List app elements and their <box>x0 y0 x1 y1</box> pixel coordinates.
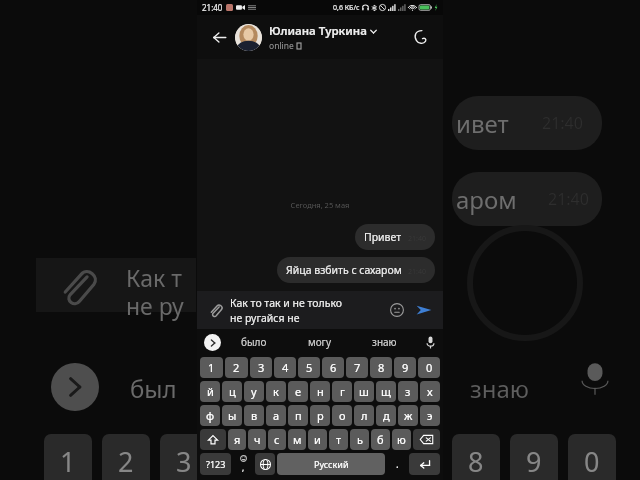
button[interactable]: 0 <box>418 357 440 378</box>
button[interactable]: Voice input <box>417 329 443 355</box>
button[interactable]: 3 <box>250 357 272 378</box>
staticText: д <box>383 408 390 423</box>
button[interactable]: и <box>308 429 327 450</box>
staticText: ц <box>229 384 236 399</box>
button[interactable]: 4 <box>274 357 296 378</box>
button[interactable]: 5 <box>298 357 320 378</box>
button[interactable]: щ <box>376 381 396 402</box>
button[interactable]: л <box>354 405 374 426</box>
button[interactable]: ы <box>222 405 242 426</box>
button[interactable]: Change language <box>255 453 275 475</box>
button[interactable]: знаю <box>352 329 417 355</box>
button[interactable]: . <box>387 453 407 475</box>
button[interactable]: 6 <box>322 357 344 378</box>
button[interactable]: ?123 <box>200 453 231 475</box>
button[interactable]: н <box>310 381 330 402</box>
button[interactable]: Shift <box>200 429 226 450</box>
staticText: знаю <box>470 372 529 405</box>
button[interactable]: й <box>200 381 220 402</box>
button[interactable]: было <box>221 329 287 355</box>
staticText: 21:40 <box>542 112 583 134</box>
button[interactable]: я <box>228 429 246 450</box>
button[interactable]: п <box>288 405 308 426</box>
button[interactable]: Enter <box>409 453 440 475</box>
button[interactable]: о <box>332 405 352 426</box>
staticText: г <box>340 384 345 399</box>
staticText: могу <box>308 335 332 349</box>
button[interactable]: More suggestions <box>204 334 221 351</box>
staticText: ч <box>254 432 261 447</box>
staticText: было <box>241 335 267 349</box>
button[interactable]: а <box>266 405 286 426</box>
button[interactable]: Emoji and comma <box>233 453 253 475</box>
button[interactable]: Яйца взбить с сахаром <box>277 257 435 283</box>
staticText: 9 <box>526 443 542 480</box>
button[interactable]: Юлиана Туркина <box>235 23 406 52</box>
button[interactable]: Привет <box>355 224 435 250</box>
staticText: 1 <box>208 360 215 375</box>
staticText: 0,6 КБ/c <box>333 3 360 13</box>
staticText: э <box>427 408 433 423</box>
button[interactable]: могу <box>287 329 352 355</box>
staticText: 8 <box>378 360 385 375</box>
button[interactable]: Attach <box>204 299 226 321</box>
button[interactable]: 7 <box>346 357 368 378</box>
staticText: 3 <box>176 443 192 480</box>
staticText: п <box>295 408 302 423</box>
button[interactable]: Call <box>406 23 434 51</box>
button[interactable]: Backspace <box>413 429 440 450</box>
staticText: 8 <box>468 443 484 480</box>
staticText: аром <box>456 183 517 216</box>
staticText: не ругайся не <box>230 311 300 325</box>
button[interactable]: м <box>288 429 306 450</box>
staticText: ш <box>359 384 369 399</box>
staticText: ф <box>206 408 215 423</box>
staticText: щ <box>381 384 391 399</box>
staticText: ж <box>404 408 413 423</box>
button[interactable]: Русский <box>277 453 385 475</box>
staticText: Как т <box>126 262 182 293</box>
button[interactable]: 1 <box>200 357 223 378</box>
staticText: 0 <box>426 360 433 375</box>
staticText: л <box>361 408 368 423</box>
button[interactable]: Send <box>412 298 436 322</box>
staticText: р <box>317 408 324 423</box>
button[interactable]: р <box>310 405 330 426</box>
button[interactable]: 8 <box>370 357 392 378</box>
button[interactable]: ц <box>222 381 242 402</box>
button[interactable]: ь <box>350 429 369 450</box>
button[interactable]: б <box>371 429 390 450</box>
button[interactable]: ю <box>392 429 411 450</box>
button[interactable]: Как то так и не только <box>230 296 386 325</box>
button[interactable]: з <box>398 381 418 402</box>
button[interactable]: х <box>420 381 440 402</box>
button[interactable]: в <box>244 405 264 426</box>
staticText: у <box>251 384 257 399</box>
button[interactable]: э <box>420 405 440 426</box>
staticText: ы <box>228 408 237 423</box>
staticText: ю <box>397 432 406 447</box>
button[interactable]: 2 <box>225 357 248 378</box>
staticText: 2 <box>233 360 240 375</box>
button[interactable]: Back <box>206 24 232 50</box>
staticText: 2 <box>118 443 134 480</box>
staticText: в <box>251 408 258 423</box>
button[interactable]: т <box>329 429 348 450</box>
button[interactable]: ж <box>398 405 418 426</box>
button[interactable]: е <box>288 381 308 402</box>
staticText: з <box>405 384 411 399</box>
button[interactable]: ч <box>248 429 266 450</box>
button[interactable]: 9 <box>394 357 416 378</box>
staticText: Сегодня, 25 мая <box>205 200 435 210</box>
button[interactable]: ф <box>200 405 220 426</box>
button[interactable]: д <box>376 405 396 426</box>
button[interactable]: с <box>268 429 286 450</box>
button[interactable]: Emoji <box>386 299 408 321</box>
button[interactable]: ш <box>354 381 374 402</box>
button[interactable]: к <box>266 381 286 402</box>
button[interactable]: г <box>332 381 352 402</box>
staticText: 21:40 <box>548 188 589 210</box>
button[interactable]: у <box>244 381 264 402</box>
staticText: 6 <box>330 360 337 375</box>
